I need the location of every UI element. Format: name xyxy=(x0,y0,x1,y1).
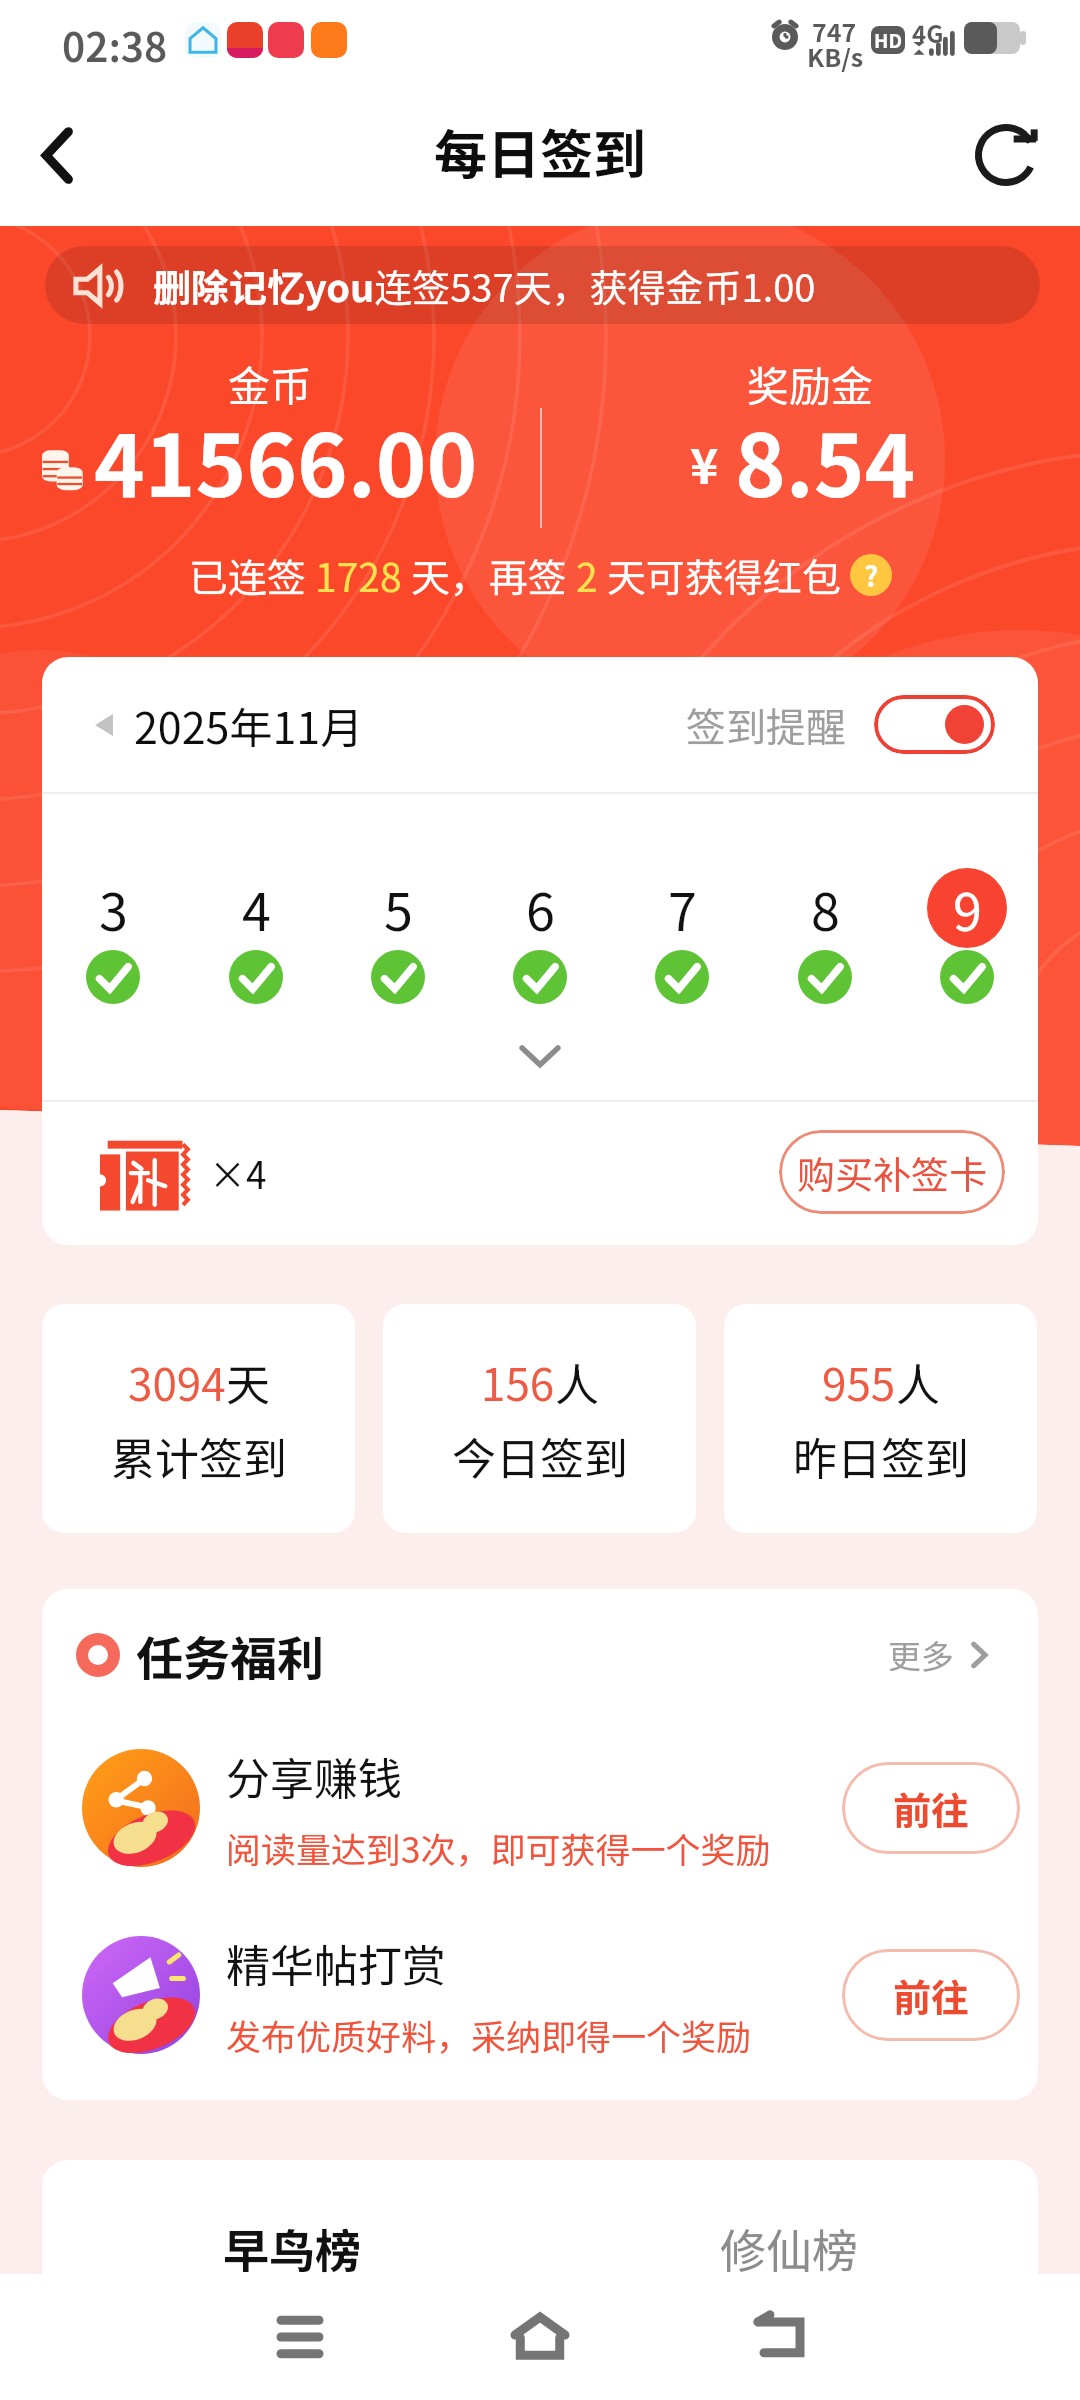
staticText: 2 xyxy=(576,547,598,603)
staticText: 更多 xyxy=(888,1631,954,1679)
button[interactable]: 分享赚钱 xyxy=(82,1728,1020,1888)
button[interactable]: Help xyxy=(850,554,892,596)
staticText: HD xyxy=(874,26,902,54)
staticText: 修仙榜 xyxy=(720,2215,858,2282)
button[interactable]: 修仙榜 xyxy=(608,2193,970,2303)
button[interactable]: Sign-in reminder toggle xyxy=(874,695,995,754)
button[interactable]: 9 xyxy=(927,868,1007,948)
staticText: 天，再签 xyxy=(402,547,576,603)
staticText: 747 xyxy=(812,13,857,49)
button[interactable]: Expand calendar xyxy=(512,1030,568,1086)
staticText: 8 xyxy=(811,871,840,946)
button[interactable]: Recent apps xyxy=(240,2277,360,2397)
staticText: 5 xyxy=(384,871,413,946)
staticText: 每日签到 xyxy=(434,113,646,190)
staticText: 156 xyxy=(481,1350,555,1414)
staticText: ? xyxy=(864,555,879,596)
button[interactable]: 3 xyxy=(73,868,153,948)
staticText: 9 xyxy=(953,871,982,946)
button[interactable]: 前往 xyxy=(842,1949,1020,2041)
button[interactable]: 6 xyxy=(500,868,580,948)
staticText: 3094 xyxy=(128,1350,226,1414)
staticText: 天 xyxy=(226,1350,270,1414)
staticText: 删除记忆you连签537天，获得金币1.00 xyxy=(153,258,816,313)
button[interactable]: Back xyxy=(10,108,104,202)
button[interactable]: 前往 xyxy=(842,1762,1020,1854)
staticText: 天可获得红包 xyxy=(598,547,850,603)
staticText: 昨日签到 xyxy=(793,1424,969,1488)
staticText: 早鸟榜 xyxy=(223,2215,361,2282)
button[interactable]: Home xyxy=(480,2275,600,2395)
staticText: 前往 xyxy=(893,1968,970,2023)
staticText: 任务福利 xyxy=(136,1621,324,1689)
button[interactable]: 更多 xyxy=(888,1631,996,1679)
staticText: 今日签到 xyxy=(452,1424,628,1488)
staticText: ¥ xyxy=(690,428,719,498)
staticText: ×4 xyxy=(209,1146,267,1200)
button[interactable]: 购买补签卡 xyxy=(779,1130,1005,1214)
button[interactable]: 7 xyxy=(642,868,722,948)
button[interactable]: 3094 xyxy=(42,1304,355,1533)
staticText: 发布优质好料，采纳即得一个奖励 xyxy=(226,2009,752,2060)
staticText: 签到提醒 xyxy=(686,696,846,754)
staticText: 购买补签卡 xyxy=(797,1145,988,1200)
staticText: 1728 xyxy=(315,547,402,603)
button[interactable]: 8 xyxy=(785,868,865,948)
staticText: 4 xyxy=(242,871,271,946)
staticText: 前往 xyxy=(893,1781,970,1836)
staticText: KB/s xyxy=(807,38,864,74)
button[interactable]: 删除记忆you连签537天，获得金币1.00 xyxy=(45,246,1040,324)
button[interactable]: 5 xyxy=(358,868,438,948)
button[interactable]: Refresh xyxy=(959,108,1053,202)
staticText: 3 xyxy=(99,871,128,946)
staticText: 阅读量达到3次，即可获得一个奖励 xyxy=(226,1822,771,1873)
staticText: 02:38 xyxy=(62,16,168,74)
button[interactable]: 4 xyxy=(216,868,296,948)
staticText: 金币 xyxy=(0,353,540,414)
button[interactable]: Back xyxy=(720,2276,840,2396)
staticText: 4G xyxy=(912,15,944,50)
staticText: 8.54 xyxy=(735,397,916,522)
button[interactable]: 156 xyxy=(383,1304,696,1533)
staticText: 7 xyxy=(668,871,697,946)
staticText: 41566.00 xyxy=(94,397,478,522)
button[interactable]: 早鸟榜 xyxy=(111,2193,473,2303)
staticText: 已连签 xyxy=(189,547,315,603)
button[interactable]: 955 xyxy=(724,1304,1037,1533)
staticText: 奖励金 xyxy=(540,353,1080,414)
staticText: 分享赚钱 xyxy=(226,1744,402,1808)
staticText: 955 xyxy=(822,1350,896,1414)
staticText: 人 xyxy=(555,1350,599,1414)
staticText: 人 xyxy=(896,1350,940,1414)
button[interactable]: 精华帖打赏 xyxy=(82,1915,1020,2075)
staticText: 累计签到 xyxy=(111,1424,287,1488)
staticText: 6 xyxy=(526,871,555,946)
staticText: 精华帖打赏 xyxy=(226,1931,446,1995)
staticText: 2025年11月 xyxy=(134,694,364,756)
